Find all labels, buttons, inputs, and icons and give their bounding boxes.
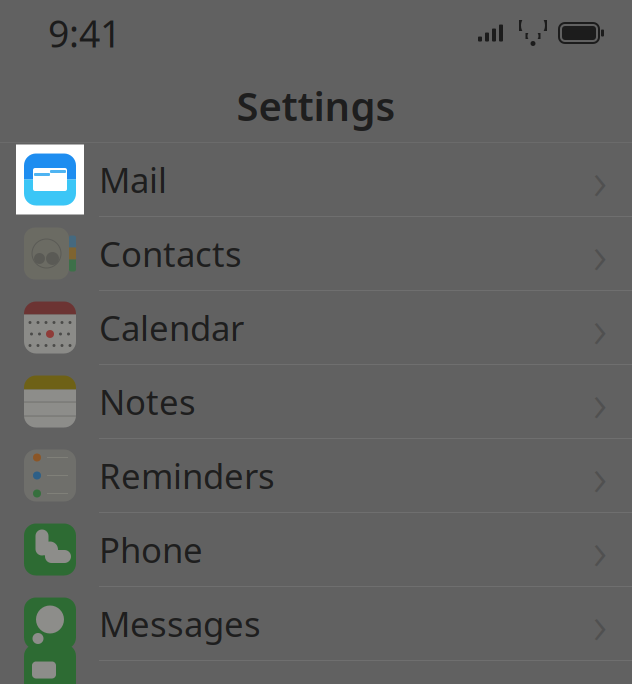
staticText: ›: [593, 366, 607, 437]
staticText: Reminders: [99, 452, 275, 498]
staticText: ›: [593, 588, 607, 659]
staticText: ›: [593, 440, 607, 511]
staticText: Mail: [99, 156, 167, 202]
staticText: ›: [593, 514, 607, 585]
button[interactable]: Phone: [0, 513, 632, 587]
button[interactable]: Mail: [0, 143, 632, 217]
staticText: ›: [593, 292, 607, 363]
button[interactable]: Reminders: [0, 439, 632, 513]
staticText: Phone: [99, 526, 203, 572]
button[interactable]: Messages: [0, 587, 632, 661]
staticText: 9:41: [48, 8, 121, 58]
button[interactable]: Notes: [0, 365, 632, 439]
button[interactable]: Contacts: [0, 217, 632, 291]
button[interactable]: Calendar: [0, 291, 632, 365]
button[interactable]: Settings: [0, 69, 632, 143]
staticText: ›: [593, 218, 607, 289]
staticText: Contacts: [99, 230, 242, 276]
staticText: Settings: [236, 79, 395, 132]
staticText: Notes: [99, 378, 196, 424]
staticText: ›: [593, 144, 607, 215]
button[interactable]: FaceTime: [0, 661, 632, 679]
staticText: Messages: [99, 600, 261, 646]
staticText: Calendar: [99, 304, 244, 350]
